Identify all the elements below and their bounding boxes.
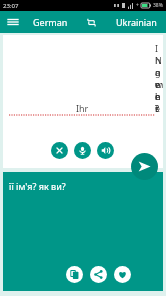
button[interactable]: Swap languages [82,13,100,31]
button[interactable]: Ihr [3,35,163,168]
button[interactable]: Translate [131,153,158,180]
button[interactable]: Add to favourites [114,266,131,283]
button[interactable]: Share [90,266,107,283]
button[interactable]: її ім'я? як ви? [3,172,163,291]
staticText: German [33,16,68,28]
button[interactable]: Ukrainian [108,11,164,33]
staticText: Ihr [76,102,89,114]
staticText: Ukrainian [116,16,157,28]
staticText: її ім'я? як ви? [9,180,66,192]
staticText: 23:07 [3,2,19,10]
button[interactable]: Open navigation menu [4,13,22,31]
button[interactable]: German [24,11,76,33]
staticText: + [136,2,139,9]
staticText: 38% [153,2,163,9]
button[interactable]: Listen [97,142,114,159]
button[interactable]: Speak, voice input [74,142,91,159]
button[interactable]: Clear text [51,142,68,159]
button[interactable]: Copy [66,266,83,283]
